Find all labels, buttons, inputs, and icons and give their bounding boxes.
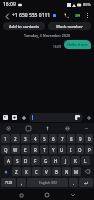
button[interactable]: D xyxy=(22,156,30,165)
staticText: M xyxy=(74,169,79,175)
button[interactable]: More xyxy=(20,114,27,121)
button[interactable]: H xyxy=(51,156,60,165)
button[interactable]: Block number xyxy=(48,22,91,30)
button[interactable]: Settings xyxy=(4,124,12,132)
button[interactable]: N xyxy=(62,167,71,176)
button[interactable]: E xyxy=(21,145,30,154)
button[interactable]: 8 xyxy=(67,134,75,143)
staticText: Tuesday, 3 November 2020 xyxy=(24,33,71,38)
staticText: T xyxy=(43,147,46,153)
staticText: ?123 xyxy=(5,180,13,185)
staticText: 7 xyxy=(61,136,64,142)
button[interactable]: Q xyxy=(1,145,10,154)
staticText: V xyxy=(45,169,48,175)
staticText: A xyxy=(7,158,10,164)
button[interactable]: 0 xyxy=(85,134,93,143)
button[interactable]: English (US) xyxy=(27,178,68,187)
staticText: 0 xyxy=(88,136,91,142)
button[interactable]: Camera xyxy=(11,114,18,121)
button[interactable]: M xyxy=(72,167,81,176)
staticText: Q xyxy=(4,147,8,153)
staticText: 1 xyxy=(4,136,7,142)
button[interactable]: Video call xyxy=(72,10,83,21)
button[interactable]: 7 xyxy=(58,134,66,143)
button[interactable]: Enter xyxy=(79,178,93,187)
staticText: Y xyxy=(52,147,55,153)
staticText: F xyxy=(34,158,37,164)
button[interactable]: Recents xyxy=(16,190,26,200)
button[interactable]: Stickers xyxy=(24,124,32,132)
button[interactable]: 6 xyxy=(49,134,57,143)
staticText: N xyxy=(65,169,69,175)
button[interactable]: I xyxy=(67,145,75,154)
staticText: Add to contacts xyxy=(9,24,39,29)
staticText: 5 xyxy=(43,136,46,142)
staticText: J xyxy=(65,158,67,164)
staticText: 4 xyxy=(34,136,37,142)
staticText: O xyxy=(78,147,82,153)
staticText: 16:09 xyxy=(53,45,62,49)
staticText: , xyxy=(21,180,23,186)
staticText: U xyxy=(60,147,64,153)
staticText: . xyxy=(73,180,75,186)
button[interactable]: Send xyxy=(85,114,92,121)
button[interactable]: Call xyxy=(61,10,72,21)
button[interactable]: F xyxy=(31,156,40,165)
button[interactable]: C xyxy=(32,167,41,176)
staticText: C xyxy=(35,169,38,175)
button[interactable]: B xyxy=(52,167,61,176)
button[interactable]: Back xyxy=(2,11,12,21)
button[interactable]: More options xyxy=(83,11,92,20)
button[interactable]: U xyxy=(58,145,66,154)
button[interactable]: W xyxy=(11,145,20,154)
button[interactable]: Translate xyxy=(63,124,71,132)
button[interactable]: S xyxy=(13,156,21,165)
staticText: 8 xyxy=(70,136,73,142)
staticText: 6 xyxy=(52,136,55,142)
button[interactable]: G xyxy=(41,156,50,165)
button[interactable]: T xyxy=(40,145,48,154)
button[interactable]: Back xyxy=(68,190,78,200)
staticText: Z xyxy=(15,169,18,175)
button[interactable]: Backspace xyxy=(82,167,93,176)
button[interactable]: P xyxy=(85,145,93,154)
staticText: +1 650 555 0111 xyxy=(12,12,51,19)
button[interactable]: 9 xyxy=(76,134,84,143)
button[interactable]: 2 xyxy=(11,134,20,143)
staticText: I xyxy=(70,147,72,153)
button[interactable]: Voice input xyxy=(43,124,51,132)
staticText: Hello there xyxy=(67,42,88,47)
button[interactable]: A xyxy=(4,156,12,165)
staticText: P xyxy=(88,147,91,153)
button[interactable]: Shift xyxy=(1,167,11,176)
staticText: D xyxy=(24,158,28,164)
button[interactable]: Z xyxy=(12,167,21,176)
staticText: B xyxy=(55,169,58,175)
button[interactable]: . xyxy=(69,178,78,187)
button[interactable]: Add to contacts xyxy=(3,22,45,30)
button[interactable]: Home xyxy=(42,190,52,200)
button[interactable]: 3 xyxy=(21,134,30,143)
button[interactable]: K xyxy=(71,156,80,165)
button[interactable]: O xyxy=(76,145,84,154)
button[interactable]: , xyxy=(17,178,26,187)
button[interactable]: V xyxy=(42,167,51,176)
staticText: English (US) xyxy=(39,181,57,185)
staticText: K xyxy=(74,158,77,164)
button[interactable]: L xyxy=(81,156,90,165)
button[interactable]: R xyxy=(31,145,39,154)
button[interactable]: 4 xyxy=(31,134,39,143)
button[interactable]: 5 xyxy=(40,134,48,143)
button[interactable]: X xyxy=(22,167,31,176)
staticText: H xyxy=(54,158,58,164)
button[interactable]: 1 xyxy=(1,134,10,143)
button[interactable]: Hello there xyxy=(64,40,91,49)
button[interactable]: Gallery xyxy=(2,114,9,121)
button[interactable]: More xyxy=(82,124,90,132)
staticText: 9 xyxy=(79,136,82,142)
button[interactable]: Y xyxy=(49,145,57,154)
button[interactable] xyxy=(29,113,83,122)
staticText: Block number xyxy=(56,24,83,29)
button[interactable]: J xyxy=(61,156,70,165)
button[interactable]: ?123 xyxy=(1,178,16,187)
